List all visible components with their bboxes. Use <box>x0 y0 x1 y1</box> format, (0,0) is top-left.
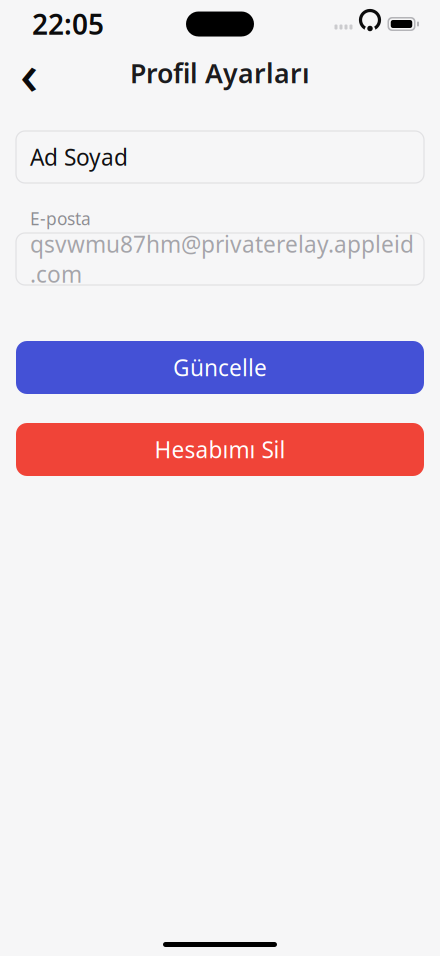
staticText: 22:05 <box>32 5 104 43</box>
button[interactable]: Ad Soyad <box>16 131 424 183</box>
button[interactable]: Hesabımı Sil <box>16 423 424 476</box>
staticText: E-posta <box>30 207 91 230</box>
staticText: Profil Ayarları <box>130 55 310 91</box>
button[interactable]: Back <box>7 51 51 95</box>
button[interactable]: Güncelle <box>16 341 424 394</box>
staticText: qsvwmu87hm@privaterelay.appleid.com <box>30 229 414 289</box>
staticText: Güncelle <box>173 352 267 382</box>
button[interactable]: qsvwmu87hm@privaterelay.appleid.com <box>16 207 424 311</box>
staticText: Ad Soyad <box>30 142 128 172</box>
staticText: Hesabımı Sil <box>154 434 285 464</box>
staticText: ‹ <box>20 36 38 110</box>
